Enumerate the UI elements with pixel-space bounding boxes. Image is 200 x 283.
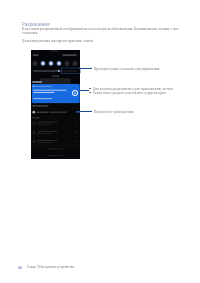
staticText: Разрешения bbox=[22, 21, 50, 27]
staticText: Также более разреш. для отключ. в других… bbox=[93, 91, 167, 95]
staticText: Глава 3 Настройка устройства bbox=[27, 265, 75, 269]
button[interactable]: Quick settings screenshot bbox=[31, 50, 80, 159]
staticText: Классами разрешений отображаются в после… bbox=[22, 26, 179, 35]
staticText: 45 bbox=[18, 265, 23, 270]
staticText: Для актуальных настроек прилож. сайта. bbox=[22, 38, 94, 43]
staticText: Для доступа разрешения к уже приложению,… bbox=[93, 87, 174, 91]
staticText: Покажет все уведомления bbox=[94, 110, 134, 114]
staticText: Проведите вниз от панели для управления … bbox=[94, 67, 174, 71]
